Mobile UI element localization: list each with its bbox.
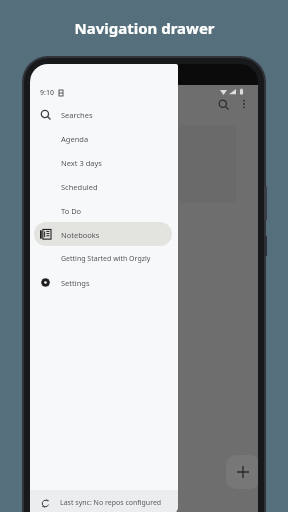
button[interactable]: Notebooks xyxy=(34,222,172,246)
staticText: Notebooks xyxy=(61,230,100,240)
staticText: Navigation drawer xyxy=(74,18,215,38)
button[interactable]: To Do xyxy=(34,198,172,222)
staticText: Scheduled xyxy=(61,182,98,192)
staticText: Settings xyxy=(61,278,90,288)
staticText: 9:10 xyxy=(40,88,54,98)
button[interactable]: Add note xyxy=(226,455,258,489)
button[interactable]: Last sync: No repos configured xyxy=(30,490,178,512)
button[interactable]: Next 3 days xyxy=(34,150,172,174)
staticText: Next 3 days xyxy=(61,158,102,168)
staticText: Agenda xyxy=(61,134,89,144)
button[interactable]: Search xyxy=(212,93,234,115)
button[interactable]: Getting Started with Orgzly xyxy=(34,246,172,270)
button[interactable]: More options xyxy=(234,94,254,114)
staticText: Last sync: No repos configured xyxy=(60,498,162,508)
button[interactable]: Agenda xyxy=(34,126,172,150)
button[interactable]: Settings xyxy=(34,270,172,294)
staticText: To Do xyxy=(61,206,82,216)
button[interactable]: Scheduled xyxy=(34,174,172,198)
button[interactable]: Orgzly xyxy=(40,125,236,203)
staticText: Getting Started with Orgzly xyxy=(61,254,151,264)
button[interactable]: Searches xyxy=(34,102,172,126)
staticText: Searches xyxy=(61,110,93,120)
staticText: Orgzly xyxy=(52,139,95,158)
